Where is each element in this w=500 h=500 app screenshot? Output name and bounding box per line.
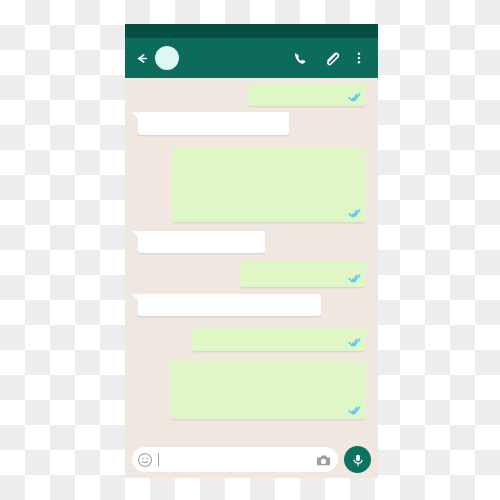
button[interactable]	[240, 262, 371, 287]
button[interactable]: Contact avatar	[155, 46, 179, 70]
button[interactable]	[171, 361, 371, 419]
button[interactable]: Back	[132, 48, 152, 68]
button[interactable]	[247, 84, 371, 106]
button[interactable]: Camera	[314, 451, 332, 469]
button[interactable]: Voice message	[344, 446, 371, 473]
button[interactable]: Attach	[319, 46, 343, 70]
button[interactable]: Voice call	[288, 46, 312, 70]
button[interactable]	[172, 148, 371, 222]
button[interactable]	[132, 112, 289, 135]
button[interactable]: Emoji	[137, 452, 153, 468]
button[interactable]	[132, 231, 265, 253]
button[interactable]: Emoji	[132, 447, 338, 472]
button[interactable]	[132, 294, 321, 316]
button[interactable]	[192, 328, 371, 351]
button[interactable]: More options	[348, 47, 370, 69]
